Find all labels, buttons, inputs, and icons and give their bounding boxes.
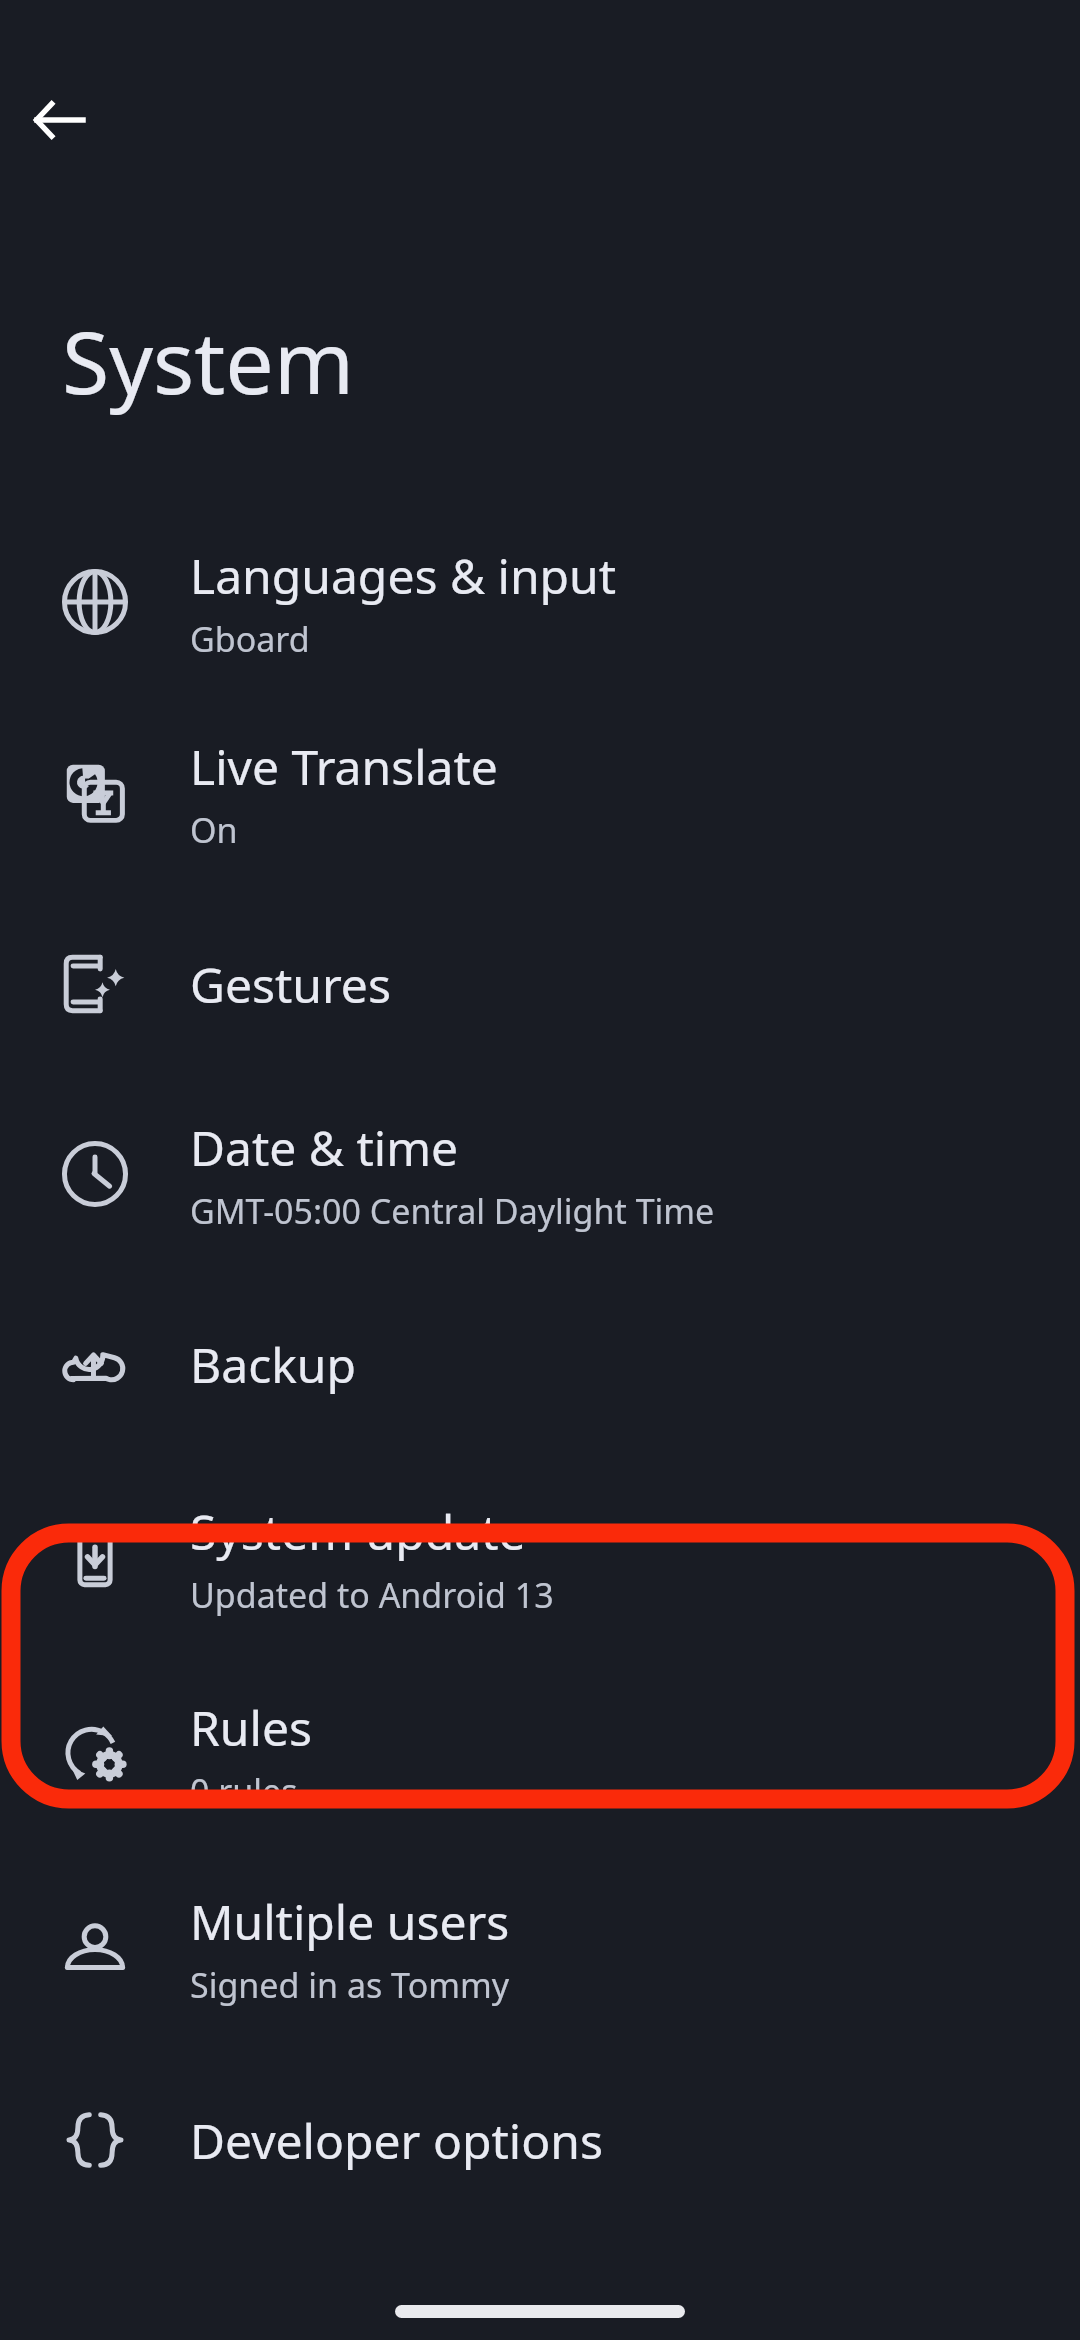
staticText: Gestures [190,952,391,1017]
staticText: System [62,302,355,419]
button[interactable]: Multiple users [0,1851,1080,2045]
staticText: Signed in as Tommy [190,1962,510,2008]
button[interactable]: Gestures [0,889,1080,1079]
button[interactable]: Back [12,72,108,168]
staticText: Languages & input [190,543,617,608]
staticText: System update [190,1499,526,1564]
button[interactable]: Live Translate [0,697,1080,889]
button[interactable]: System update [0,1459,1080,1657]
staticText: GMT-05:00 Central Daylight Time [190,1188,715,1234]
staticText: Gboard [190,616,310,662]
staticText: On [190,807,238,853]
staticText: Developer options [190,2108,603,2173]
button[interactable]: Backup [0,1269,1080,1459]
button[interactable]: Rules [0,1657,1080,1851]
staticText: Live Translate [190,734,498,799]
staticText: Date & time [190,1115,459,1180]
button[interactable]: Date & time [0,1079,1080,1269]
staticText: 0 rules [190,1768,298,1814]
button[interactable]: Languages & input [0,507,1080,697]
staticText: Backup [190,1332,356,1397]
staticText: Updated to Android 13 [190,1572,554,1618]
button[interactable]: Developer options [0,2045,1080,2235]
staticText: Multiple users [190,1889,510,1954]
staticText: Rules [190,1695,312,1760]
